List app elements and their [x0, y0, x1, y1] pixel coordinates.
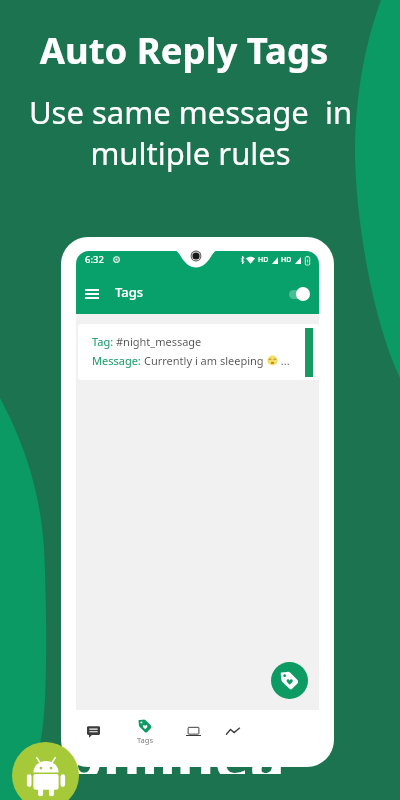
staticText: #night_message	[116, 334, 202, 349]
button[interactable]: Tag:	[78, 324, 319, 380]
staticText: Tags	[137, 735, 153, 745]
staticText: HD	[258, 255, 269, 265]
staticText: Auto Reply Tags	[0, 25, 368, 75]
staticText: Tags	[115, 283, 144, 301]
staticText: onlineapk	[66, 717, 285, 774]
button[interactable]: Add new tag	[271, 662, 308, 699]
staticText: ...	[278, 353, 290, 368]
staticText: Message:	[92, 353, 144, 368]
staticText: Currently i am sleeping	[144, 353, 267, 368]
button[interactable]: Tags	[123, 710, 167, 753]
staticText: 6:32	[85, 253, 104, 266]
button[interactable]: Devices	[171, 710, 215, 753]
staticText: Tag:	[92, 334, 116, 349]
button[interactable]: Statistics	[211, 710, 255, 753]
staticText: Use same message in multiple rules	[0, 91, 381, 174]
button[interactable]: Messages	[76, 710, 115, 753]
button[interactable]: Enable auto reply	[285, 283, 317, 305]
staticText: HD	[281, 255, 292, 265]
button[interactable]: Open navigation menu	[78, 280, 106, 308]
